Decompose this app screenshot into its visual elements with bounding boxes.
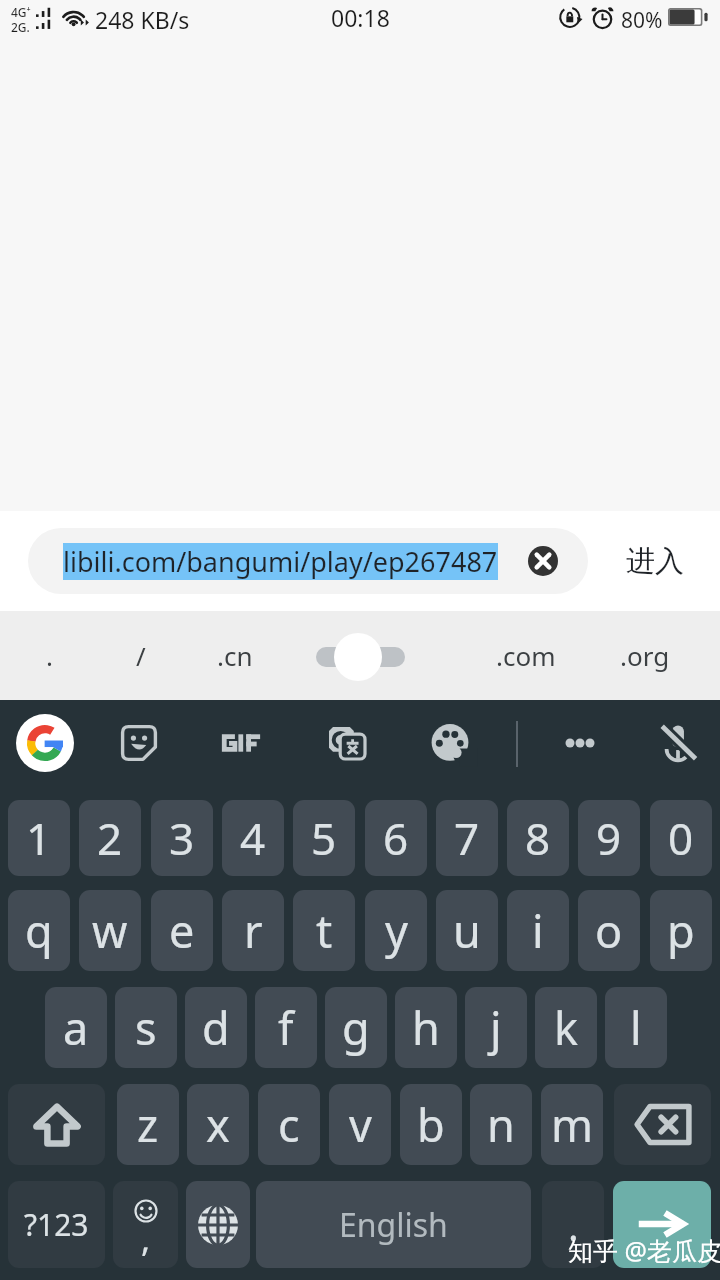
- button[interactable]: .com: [476, 611, 576, 700]
- staticText: 8: [525, 808, 551, 868]
- staticText: b: [417, 1094, 445, 1155]
- button[interactable]: s: [115, 987, 177, 1068]
- staticText: o: [595, 900, 623, 961]
- button[interactable]: v: [329, 1084, 391, 1165]
- button[interactable]: q: [8, 890, 70, 971]
- staticText: 6: [383, 808, 409, 868]
- staticText: p: [667, 900, 695, 961]
- button[interactable]: 9: [578, 800, 640, 876]
- button[interactable]: .: [542, 1181, 604, 1268]
- staticText: .com: [496, 638, 556, 673]
- staticText: q: [25, 900, 53, 961]
- staticText: e: [169, 900, 195, 961]
- button[interactable]: 0: [650, 800, 712, 876]
- button[interactable]: Google: [16, 714, 74, 772]
- button[interactable]: c: [258, 1084, 320, 1165]
- staticText: 2G.: [11, 19, 30, 35]
- button[interactable]: libili.com/bangumi/play/ep267487: [28, 528, 588, 594]
- staticText: 1: [26, 808, 52, 868]
- staticText: 248 KB/s: [95, 4, 190, 35]
- staticText: c: [278, 1094, 300, 1155]
- button[interactable]: Voice input off: [644, 709, 712, 777]
- button[interactable]: GIF: [207, 709, 275, 777]
- button[interactable]: x: [187, 1084, 249, 1165]
- staticText: 3: [169, 808, 195, 868]
- staticText: ?123: [24, 1204, 89, 1245]
- button[interactable]: p: [650, 890, 712, 971]
- button[interactable]: Theme: [416, 709, 484, 777]
- staticText: w: [92, 900, 128, 961]
- button[interactable]: Clear: [515, 533, 571, 589]
- button[interactable]: 4: [222, 800, 284, 876]
- button[interactable]: Shift: [8, 1084, 105, 1165]
- staticText: 80%: [621, 6, 663, 35]
- staticText: .cn: [217, 638, 253, 673]
- button[interactable]: f: [255, 987, 317, 1068]
- staticText: 0: [668, 808, 694, 868]
- staticText: libili.com/bangumi/play/ep267487: [63, 543, 498, 580]
- button[interactable]: 7: [436, 800, 498, 876]
- button[interactable]: l: [605, 987, 667, 1068]
- staticText: English: [339, 1203, 448, 1247]
- staticText: y: [385, 900, 408, 961]
- staticText: t: [316, 900, 333, 961]
- staticText: 进入: [626, 543, 684, 580]
- button[interactable]: Cursor slider: [300, 627, 430, 685]
- button[interactable]: ?123: [8, 1181, 105, 1268]
- button[interactable]: u: [436, 890, 498, 971]
- button[interactable]: Stickers: [105, 709, 173, 777]
- staticText: 5: [311, 808, 337, 868]
- staticText: 9: [596, 808, 622, 868]
- button[interactable]: Enter: [613, 1181, 711, 1268]
- button[interactable]: .org: [595, 611, 695, 700]
- button[interactable]: t: [293, 890, 355, 971]
- staticText: .: [46, 638, 53, 673]
- button[interactable]: g: [325, 987, 387, 1068]
- button[interactable]: Emoji and comma: [113, 1181, 178, 1268]
- staticText: v: [349, 1094, 372, 1155]
- button[interactable]: n: [470, 1084, 532, 1165]
- button[interactable]: j: [465, 987, 527, 1068]
- button[interactable]: 8: [507, 800, 569, 876]
- staticText: d: [202, 997, 230, 1058]
- button[interactable]: d: [185, 987, 247, 1068]
- button[interactable]: /: [106, 611, 176, 700]
- button[interactable]: 2: [79, 800, 141, 876]
- button[interactable]: b: [400, 1084, 462, 1165]
- staticText: k: [554, 997, 579, 1058]
- button[interactable]: y: [365, 890, 427, 971]
- button[interactable]: Translate: [313, 709, 381, 777]
- button[interactable]: k: [535, 987, 597, 1068]
- button[interactable]: i: [507, 890, 569, 971]
- button[interactable]: More options: [546, 709, 614, 777]
- staticText: ,: [141, 1216, 151, 1262]
- button[interactable]: .: [14, 611, 84, 700]
- staticText: m: [551, 1094, 594, 1155]
- staticText: n: [487, 1094, 515, 1155]
- button[interactable]: 进入: [600, 528, 710, 594]
- staticText: a: [63, 997, 89, 1058]
- button[interactable]: a: [45, 987, 107, 1068]
- button[interactable]: Change language: [186, 1181, 250, 1268]
- staticText: .org: [620, 638, 670, 673]
- staticText: i: [532, 900, 544, 961]
- button[interactable]: 1: [8, 800, 70, 876]
- button[interactable]: 3: [151, 800, 213, 876]
- staticText: g: [342, 997, 370, 1058]
- button[interactable]: w: [79, 890, 141, 971]
- staticText: l: [630, 997, 642, 1058]
- button[interactable]: e: [151, 890, 213, 971]
- staticText: 知乎 @老瓜皮: [568, 1233, 720, 1267]
- button[interactable]: o: [578, 890, 640, 971]
- button[interactable]: .cn: [200, 611, 270, 700]
- button[interactable]: English: [256, 1181, 531, 1268]
- button[interactable]: 6: [365, 800, 427, 876]
- button[interactable]: z: [117, 1084, 179, 1165]
- button[interactable]: h: [395, 987, 457, 1068]
- button[interactable]: m: [541, 1084, 603, 1165]
- button[interactable]: Backspace: [614, 1084, 711, 1165]
- button[interactable]: r: [222, 890, 284, 971]
- button[interactable]: 5: [293, 800, 355, 876]
- staticText: r: [244, 900, 263, 961]
- staticText: 4G⁺: [11, 4, 31, 20]
